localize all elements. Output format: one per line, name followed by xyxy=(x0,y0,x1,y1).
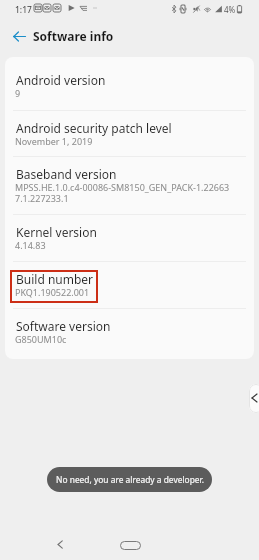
staticText: 1:17 xyxy=(15,4,32,16)
staticText: PKQ1.190522.001 xyxy=(15,286,90,298)
staticText: Kernel version xyxy=(16,224,97,240)
staticText: November 1, 2019 xyxy=(15,135,93,147)
staticText: Software version xyxy=(16,318,111,334)
staticText: Baseband version xyxy=(16,166,117,182)
button[interactable]: Kernel version xyxy=(5,215,254,262)
staticText: 9 xyxy=(15,87,21,99)
staticText: G850UM10c xyxy=(15,333,67,345)
button[interactable]: Back xyxy=(46,530,74,558)
button[interactable]: Baseband version xyxy=(5,157,254,214)
staticText: Android version xyxy=(16,72,106,88)
button[interactable]: Navigate up xyxy=(7,24,31,48)
staticText: Android security patch level xyxy=(16,120,172,136)
staticText: MPSS.HE.1.0.c4-00086-SM8150_GEN_PACK-1.2… xyxy=(15,181,230,204)
button[interactable]: Android version xyxy=(5,63,254,110)
button[interactable]: Open edge panel xyxy=(249,384,259,413)
staticText: 4% xyxy=(224,4,236,15)
button[interactable]: Software version xyxy=(5,309,254,356)
button[interactable]: Home xyxy=(112,534,148,556)
button[interactable]: Android security patch level xyxy=(5,111,254,157)
staticText: No need, you are already a developer. xyxy=(56,474,204,485)
staticText: Software info xyxy=(33,28,114,44)
staticText: 4.14.83 xyxy=(15,239,46,251)
staticText: Build number xyxy=(16,271,94,287)
button[interactable]: Build number xyxy=(5,262,254,308)
